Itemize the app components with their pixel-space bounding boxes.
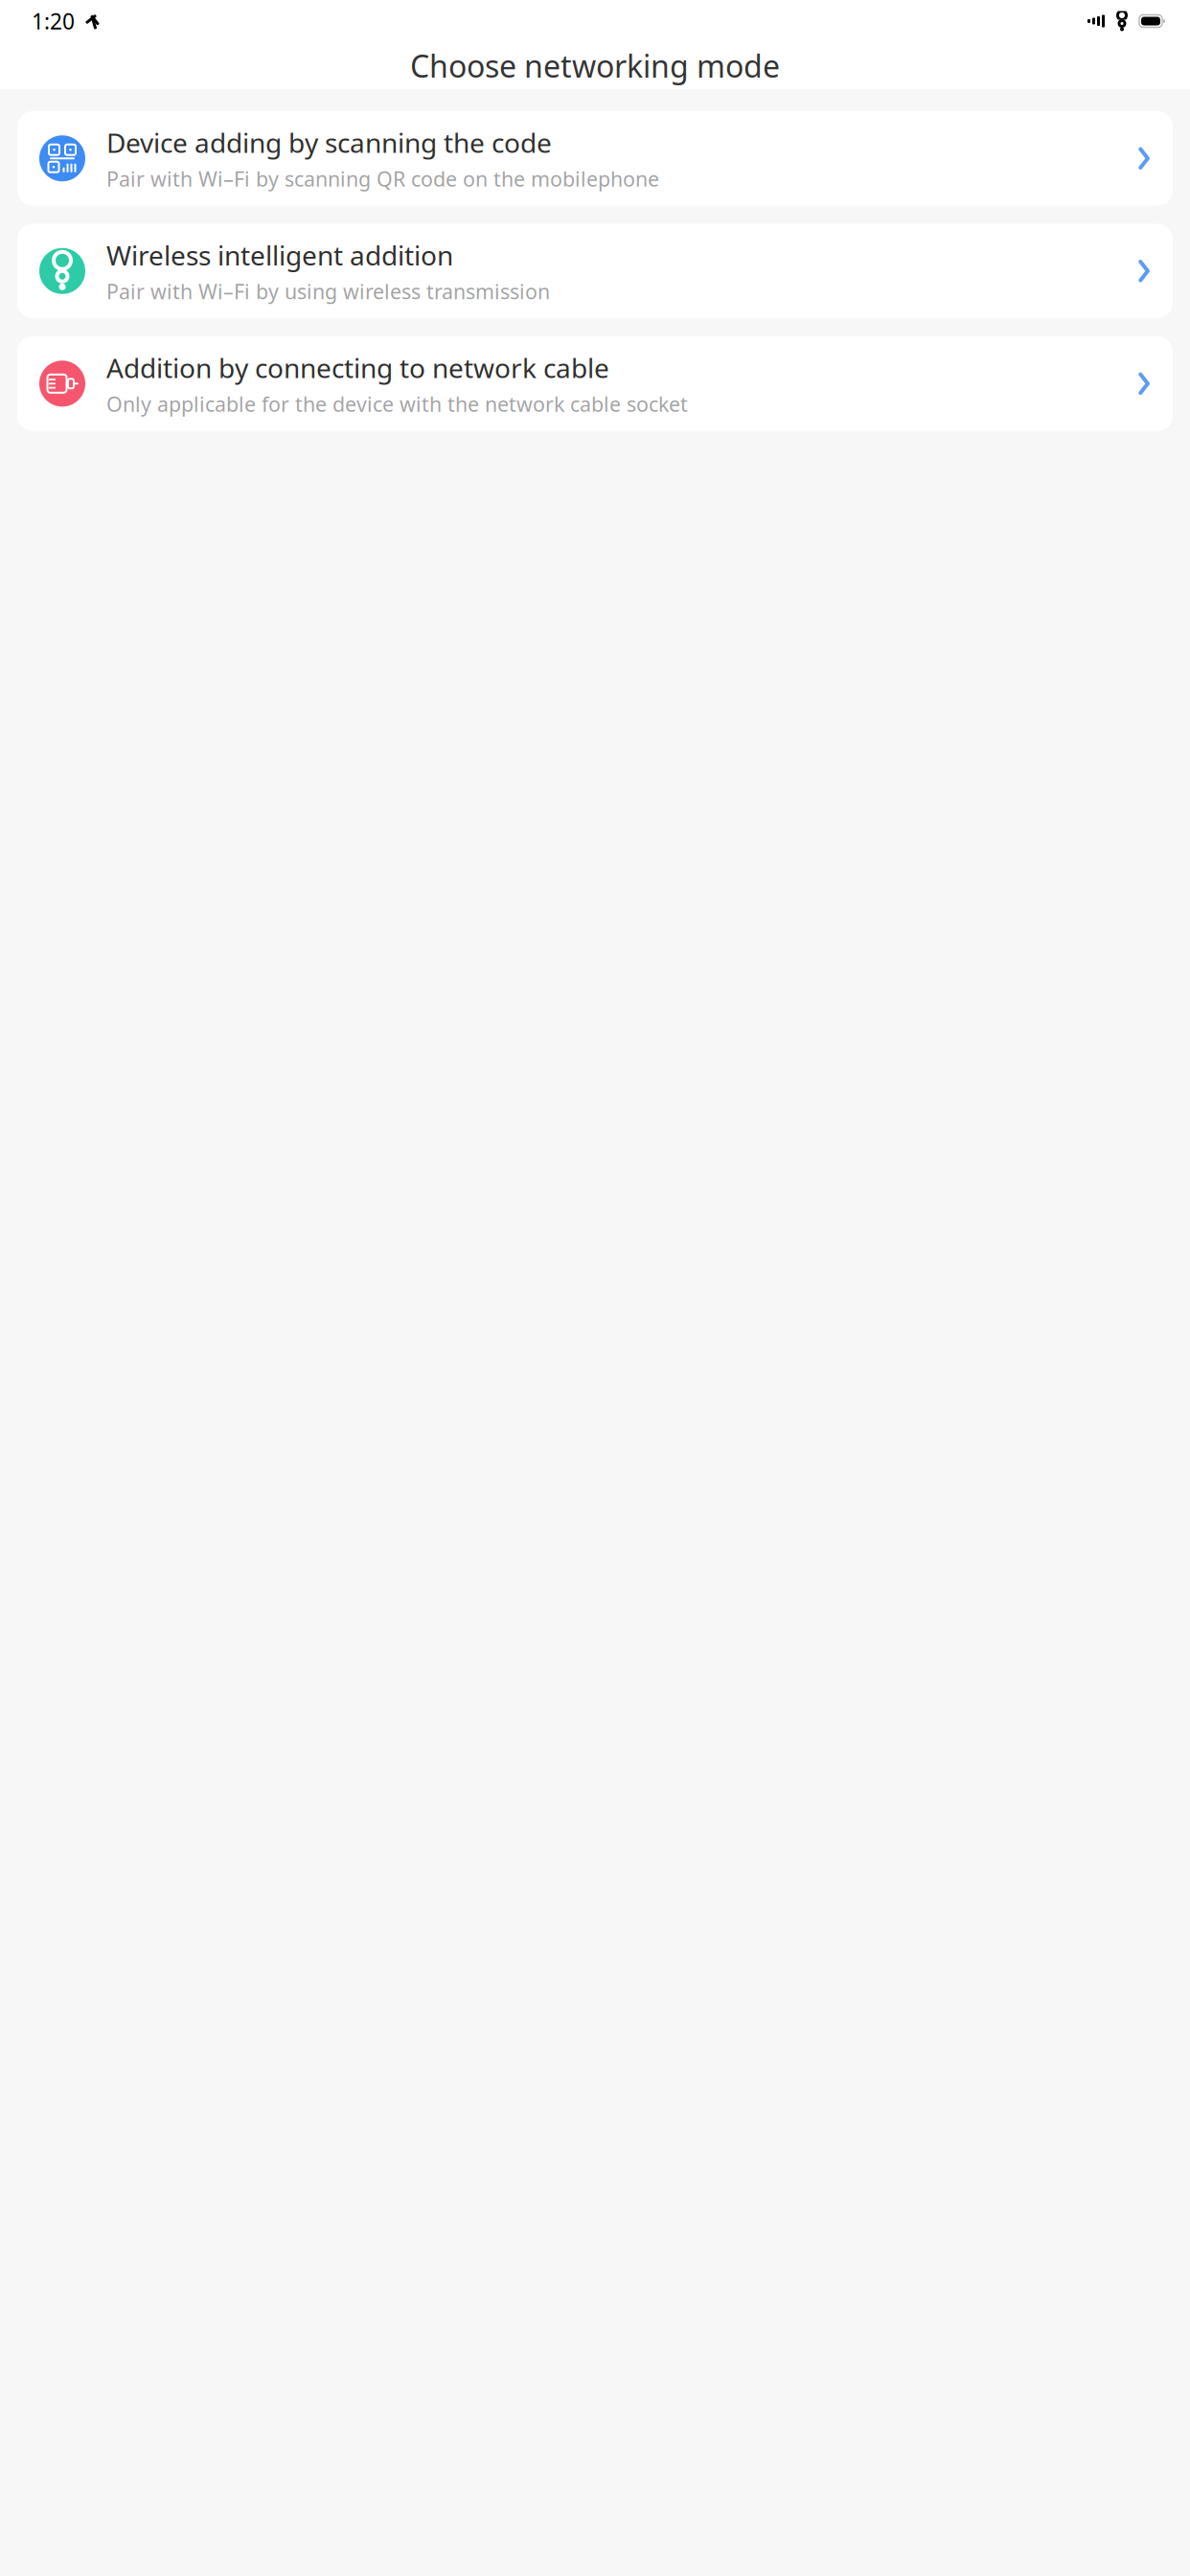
staticText: Wireless intelligent addition (106, 237, 453, 273)
staticText: Only applicable for the device with the … (106, 390, 688, 417)
button[interactable]: Wireless intelligent addition (17, 224, 1173, 318)
staticText: Choose networking mode (410, 45, 780, 86)
button[interactable]: Addition by connecting to network cable (17, 336, 1173, 431)
staticText: Pair with Wi–Fi by scanning QR code on t… (106, 165, 659, 192)
staticText: Pair with Wi–Fi by using wireless transm… (106, 278, 550, 305)
button[interactable]: Device adding by scanning the code (17, 111, 1173, 206)
staticText: Device adding by scanning the code (106, 125, 552, 160)
staticText: 1:20 (32, 7, 75, 35)
staticText: Addition by connecting to network cable (106, 350, 609, 385)
